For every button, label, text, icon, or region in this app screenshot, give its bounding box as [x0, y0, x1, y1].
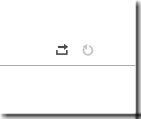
button[interactable]: Share [56, 43, 68, 55]
button[interactable]: Reset [81, 43, 93, 55]
